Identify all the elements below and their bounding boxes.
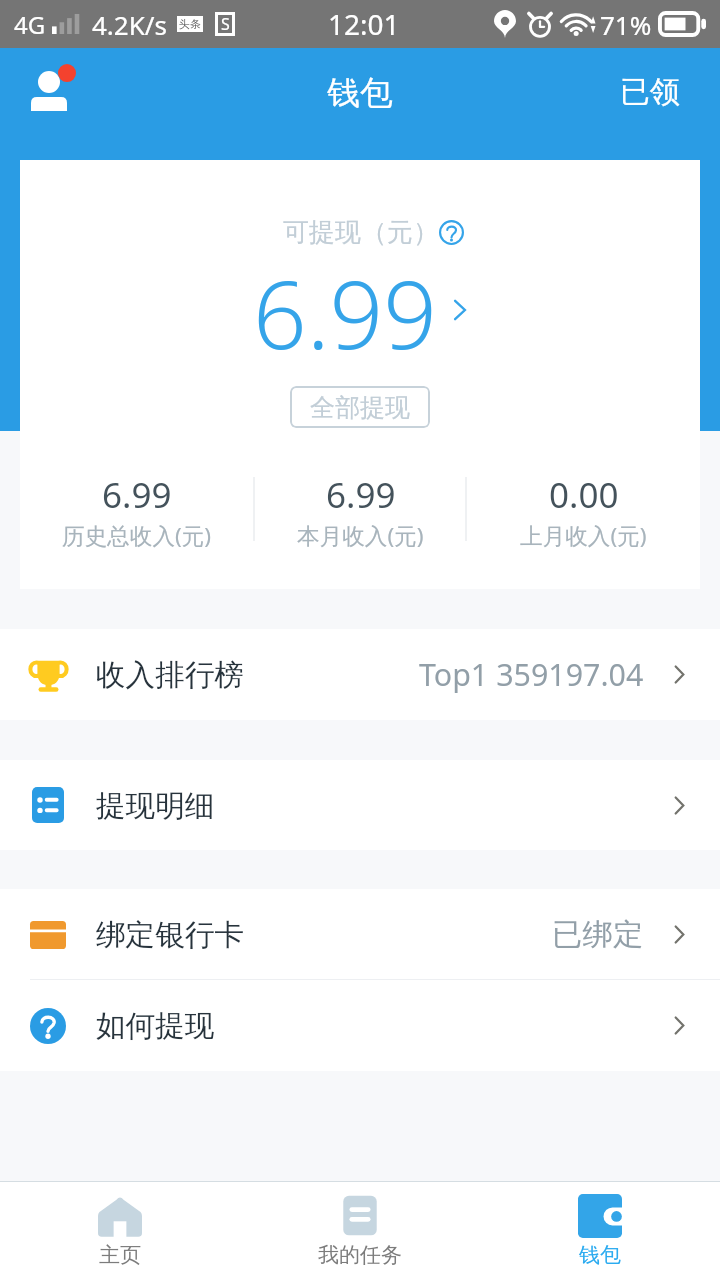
staticText: 上月收入(元) xyxy=(520,520,647,551)
staticText: 4.2K/s xyxy=(92,7,167,42)
staticText: 头条 xyxy=(179,17,201,31)
staticText: 71% xyxy=(600,7,652,42)
button[interactable]: 提现明细 xyxy=(0,760,720,850)
staticText: 钱包 xyxy=(579,1242,621,1268)
staticText: 绑定银行卡 xyxy=(96,916,244,953)
staticText: 已领 xyxy=(620,73,680,111)
staticText: 0.00 xyxy=(549,471,619,519)
button[interactable]: 钱包 xyxy=(480,1182,720,1280)
staticText: 我的任务 xyxy=(318,1242,402,1268)
button[interactable]: 绑定银行卡 xyxy=(0,889,720,980)
button[interactable]: 收入排行榜 xyxy=(0,629,720,720)
staticText: 如何提现 xyxy=(96,1007,215,1044)
staticText: 主页 xyxy=(99,1242,141,1268)
button[interactable]: Help xyxy=(439,220,464,245)
button[interactable]: 我的任务 xyxy=(240,1182,480,1280)
staticText: 历史总收入(元) xyxy=(62,520,212,551)
button[interactable]: 已领 xyxy=(588,48,720,160)
staticText: 提现明细 xyxy=(96,787,215,824)
button[interactable]: 6.99 xyxy=(253,249,467,377)
staticText: Top1 359197.04 xyxy=(419,654,644,695)
staticText: 全部提现 xyxy=(310,392,410,423)
staticText: 钱包 xyxy=(327,72,393,113)
button[interactable]: 全部提现 xyxy=(290,386,430,428)
staticText: S xyxy=(221,13,230,35)
staticText: 收入排行榜 xyxy=(96,656,244,693)
staticText: 可提现（元） xyxy=(283,216,439,249)
staticText: 4G xyxy=(14,8,46,41)
button[interactable]: 如何提现 xyxy=(0,980,720,1071)
staticText: 本月收入(元) xyxy=(297,520,424,551)
staticText: 6.99 xyxy=(253,249,437,377)
staticText: 12:01 xyxy=(328,5,400,43)
staticText: 6.99 xyxy=(102,471,172,519)
button[interactable]: 主页 xyxy=(0,1182,240,1280)
staticText: 6.99 xyxy=(326,471,396,519)
button[interactable]: Profile xyxy=(6,48,106,116)
staticText: 已绑定 xyxy=(552,916,644,954)
